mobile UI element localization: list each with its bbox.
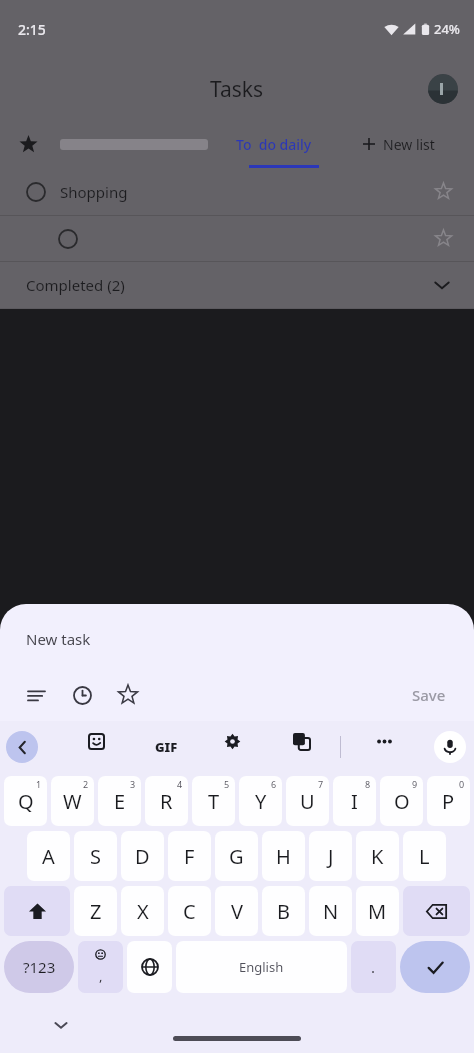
- button[interactable]: Set date and time: [62, 675, 102, 715]
- button[interactable]: .: [351, 941, 396, 993]
- button[interactable]: Starred: [0, 120, 56, 168]
- staticText: W: [63, 788, 82, 815]
- staticText: T: [208, 788, 220, 815]
- button[interactable]: N: [309, 886, 352, 936]
- button[interactable]: Change language: [127, 941, 172, 993]
- staticText: N: [323, 898, 339, 925]
- button[interactable]: Add details: [16, 675, 56, 715]
- staticText: Q: [18, 788, 34, 815]
- staticText: English: [239, 958, 284, 976]
- staticText: 2:15: [18, 20, 46, 39]
- staticText: D: [135, 843, 150, 870]
- button[interactable]: Voice input: [434, 731, 466, 763]
- staticText: R: [160, 788, 173, 815]
- button[interactable]: S: [74, 831, 117, 881]
- button[interactable]: Save: [398, 677, 460, 713]
- staticText: 7: [318, 778, 324, 790]
- button[interactable]: Q: [4, 776, 47, 826]
- staticText: C: [183, 898, 196, 925]
- staticText: 3: [130, 778, 136, 790]
- button[interactable]: Enter: [400, 941, 470, 993]
- staticText: 5: [224, 778, 230, 790]
- staticText: F: [184, 843, 195, 870]
- staticText: Tasks: [210, 75, 264, 104]
- staticText: To do daily: [236, 135, 312, 154]
- button[interactable]: D: [121, 831, 164, 881]
- button[interactable]: Back: [6, 731, 38, 763]
- button[interactable]: New list: [322, 120, 474, 168]
- button[interactable]: GIF: [146, 727, 186, 767]
- button[interactable]: K: [356, 831, 399, 881]
- button[interactable]: Completed (2): [0, 262, 474, 308]
- staticText: 8: [365, 778, 371, 790]
- button[interactable]: P: [427, 776, 470, 826]
- button[interactable]: U: [286, 776, 329, 826]
- staticText: X: [137, 898, 149, 925]
- button[interactable]: V: [215, 886, 258, 936]
- staticText: 6: [271, 778, 277, 790]
- button[interactable]: M: [356, 886, 399, 936]
- button[interactable]: Shift: [4, 886, 70, 936]
- button[interactable]: T: [192, 776, 235, 826]
- staticText: U: [300, 788, 315, 815]
- button[interactable]: [0, 216, 474, 261]
- button[interactable]: O: [380, 776, 423, 826]
- button[interactable]: Backspace: [403, 886, 470, 936]
- button[interactable]: C: [168, 886, 211, 936]
- staticText: A: [42, 843, 55, 870]
- button[interactable]: Star task: [108, 675, 148, 715]
- staticText: H: [276, 843, 291, 870]
- button[interactable]: L: [403, 831, 446, 881]
- button[interactable]: X: [121, 886, 164, 936]
- staticText: .: [371, 957, 376, 977]
- button[interactable]: J: [309, 831, 352, 881]
- button[interactable]: F: [168, 831, 211, 881]
- button[interactable]: I: [333, 776, 376, 826]
- button[interactable]: Y: [239, 776, 282, 826]
- staticText: 24%: [434, 20, 460, 38]
- staticText: New list: [383, 135, 435, 154]
- staticText: S: [90, 843, 101, 870]
- button[interactable]: R: [145, 776, 188, 826]
- staticText: Y: [255, 788, 267, 815]
- staticText: 2: [83, 778, 89, 790]
- button[interactable]: Z: [74, 886, 117, 936]
- staticText: Save: [412, 685, 446, 705]
- button[interactable]: H: [262, 831, 305, 881]
- staticText: K: [371, 843, 384, 870]
- staticText: G: [229, 843, 244, 870]
- button[interactable]: Stickers: [76, 721, 116, 761]
- staticText: J: [328, 843, 334, 870]
- staticText: M: [368, 898, 387, 925]
- staticText: GIF: [155, 738, 178, 756]
- button[interactable]: Keyboard settings: [212, 721, 252, 761]
- button[interactable]: Translate: [281, 721, 321, 761]
- button[interactable]: Hide keyboard: [44, 1008, 78, 1042]
- button[interactable]: More options: [364, 721, 404, 761]
- button[interactable]: W: [51, 776, 94, 826]
- staticText: 4: [177, 778, 183, 790]
- staticText: Completed (2): [26, 275, 125, 295]
- button[interactable]: ?123: [4, 941, 74, 993]
- staticText: Shopping: [60, 182, 128, 202]
- button[interactable]: [56, 120, 226, 168]
- staticText: New task: [26, 629, 91, 649]
- staticText: V: [231, 898, 243, 925]
- button[interactable]: To do daily: [226, 120, 322, 168]
- staticText: ,: [99, 967, 103, 985]
- staticText: 1: [36, 778, 42, 790]
- button[interactable]: Shopping: [0, 168, 474, 215]
- staticText: O: [394, 788, 410, 815]
- button[interactable]: E: [98, 776, 141, 826]
- staticText: L: [419, 843, 430, 870]
- button[interactable]: G: [215, 831, 258, 881]
- button[interactable]: English: [176, 941, 347, 993]
- staticText: 9: [412, 778, 418, 790]
- button[interactable]: Emoji and comma: [78, 941, 123, 993]
- button[interactable]: Account: [428, 74, 458, 104]
- staticText: Z: [90, 898, 102, 925]
- staticText: B: [277, 898, 290, 925]
- button[interactable]: B: [262, 886, 305, 936]
- staticText: I: [351, 788, 358, 815]
- button[interactable]: A: [27, 831, 70, 881]
